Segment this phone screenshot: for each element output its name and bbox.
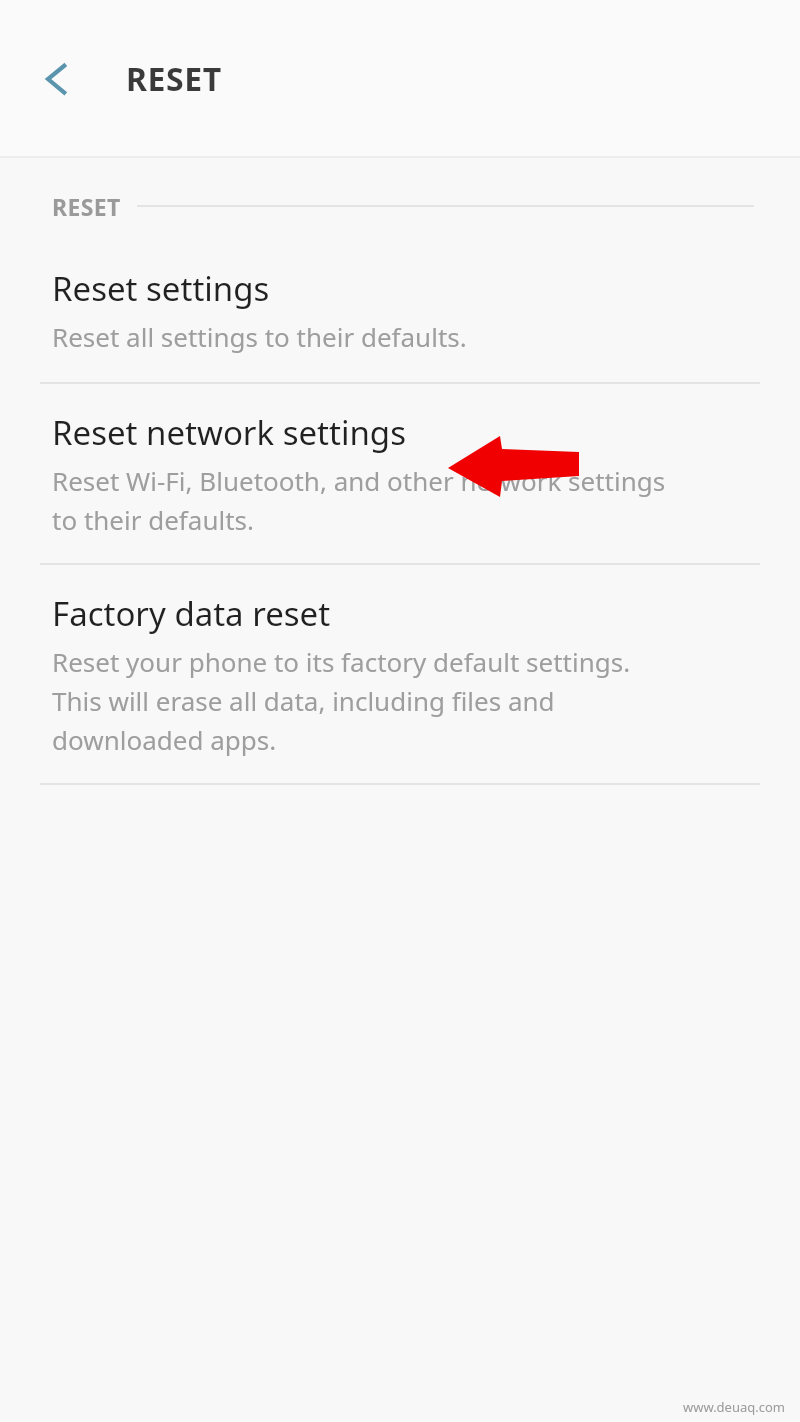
staticText: RESET <box>52 191 121 222</box>
staticText: Reset all settings to their defaults. <box>52 319 467 354</box>
staticText: Factory data reset <box>52 591 331 636</box>
staticText: Reset Wi-Fi, Bluetooth, and other networ… <box>52 463 666 498</box>
button[interactable]: Back <box>26 48 88 110</box>
button[interactable]: Factory data reset <box>0 565 800 783</box>
staticText: Reset your phone to its factory default … <box>52 644 631 679</box>
staticText: Reset network settings <box>52 410 406 455</box>
staticText: Reset settings <box>52 266 270 311</box>
staticText: RESET <box>126 57 222 101</box>
staticText: This will erase all data, including file… <box>52 683 555 718</box>
staticText: to their defaults. <box>52 502 254 537</box>
staticText: www.deuaq.com <box>683 1398 786 1416</box>
button[interactable]: Reset network settings <box>0 384 800 563</box>
button[interactable]: Reset settings <box>0 254 800 382</box>
staticText: downloaded apps. <box>52 722 277 757</box>
